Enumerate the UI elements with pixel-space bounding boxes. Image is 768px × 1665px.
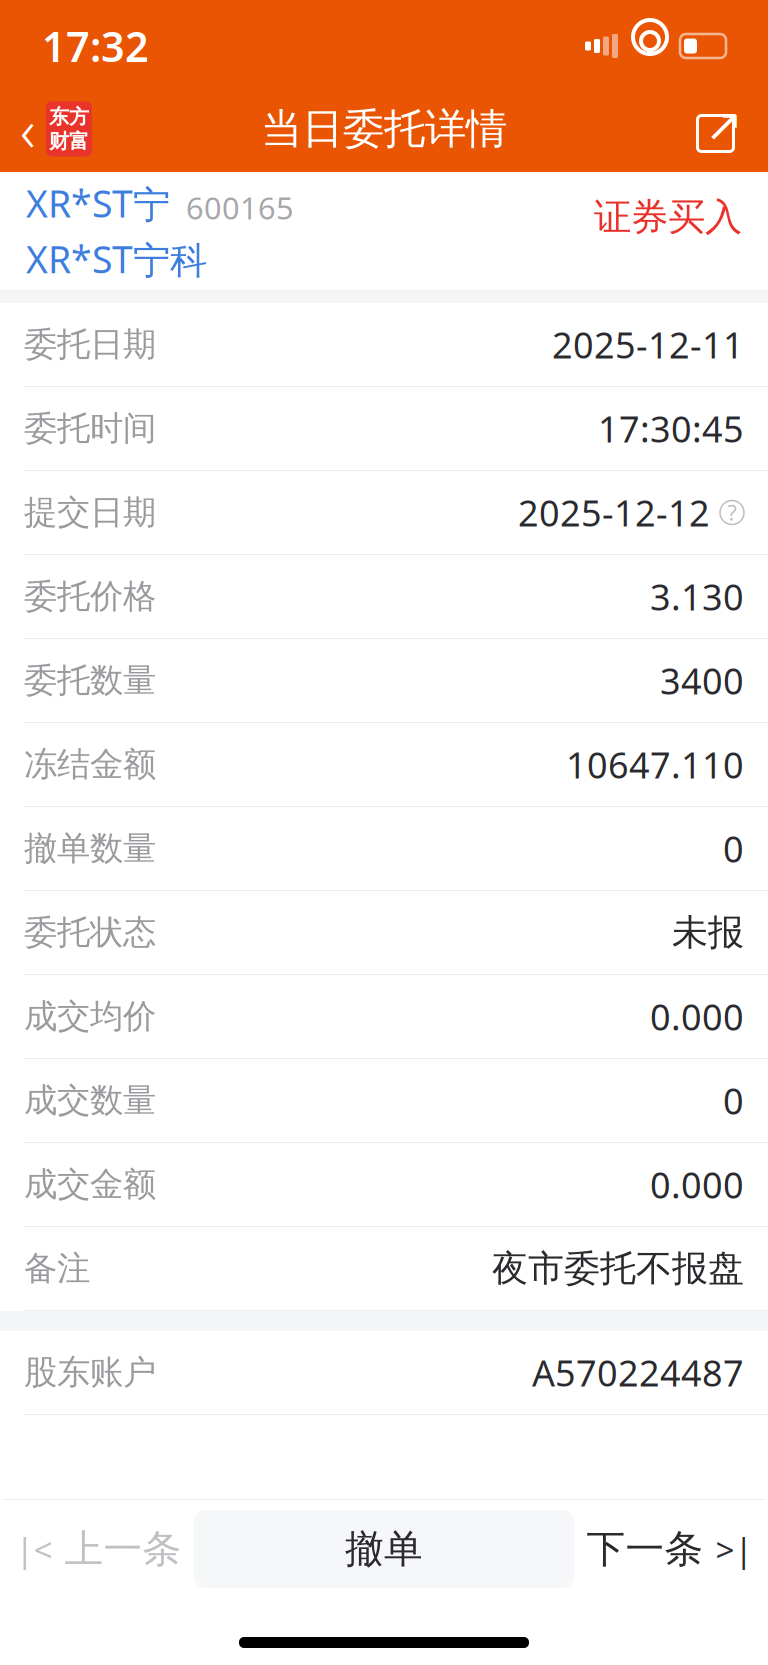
button[interactable]: |< (3, 1510, 193, 1588)
staticText: 委托价格 (24, 576, 156, 617)
staticText: 委托时间 (24, 408, 156, 449)
staticText: ↗ (705, 99, 743, 151)
staticText: 17:32 (42, 19, 149, 73)
staticText: A570224487 (532, 1349, 744, 1396)
staticText: 委托状态 (24, 912, 156, 953)
staticText: 东方 (49, 104, 89, 129)
staticText: 夜市委托不报盘 (492, 1246, 744, 1291)
staticText: XR*ST宁科 (26, 234, 207, 284)
staticText: 成交均价 (24, 996, 156, 1037)
button[interactable]: Share (672, 92, 768, 166)
staticText: 17:30:45 (598, 405, 744, 452)
staticText: ? (727, 498, 736, 527)
staticText: 0.000 (650, 1161, 744, 1208)
staticText: 提交日期 (24, 492, 156, 533)
staticText: 撤单数量 (24, 828, 156, 869)
staticText: 2025-12-11 (552, 321, 744, 368)
button[interactable]: 撤单 (193, 1510, 574, 1588)
staticText: 3400 (660, 657, 744, 704)
staticText: ‹ (20, 90, 36, 168)
staticText: 股东账户 (24, 1352, 156, 1393)
staticText: 备注 (24, 1248, 90, 1289)
staticText: 未报 (672, 910, 744, 955)
staticText: 0 (723, 1077, 744, 1124)
staticText: 上一条 (64, 1525, 181, 1573)
staticText: 2025-12-12 (518, 489, 710, 536)
staticText: 3.130 (650, 573, 744, 620)
staticText: 证券买入 (594, 194, 742, 240)
staticText: 600165 (186, 187, 294, 228)
staticText: 撤单 (345, 1525, 423, 1573)
staticText: 委托日期 (24, 324, 156, 365)
staticText: |< (15, 1527, 52, 1571)
button[interactable]: Back to 东方财富 (0, 92, 112, 166)
button[interactable]: 下一条 (574, 1510, 764, 1588)
staticText: 0.000 (650, 993, 744, 1040)
staticText: 成交数量 (24, 1080, 156, 1121)
staticText: 当日委托详情 (261, 104, 507, 154)
staticText: 冻结金额 (24, 744, 156, 785)
staticText: >| (715, 1527, 752, 1571)
staticText: 0 (723, 825, 744, 872)
staticText: 成交金额 (24, 1164, 156, 1205)
staticText: 下一条 (586, 1525, 703, 1573)
staticText: XR*ST宁 (26, 178, 170, 228)
staticText: 委托数量 (24, 660, 156, 701)
staticText: 财富 (49, 129, 89, 154)
staticText: 10647.110 (566, 741, 744, 788)
